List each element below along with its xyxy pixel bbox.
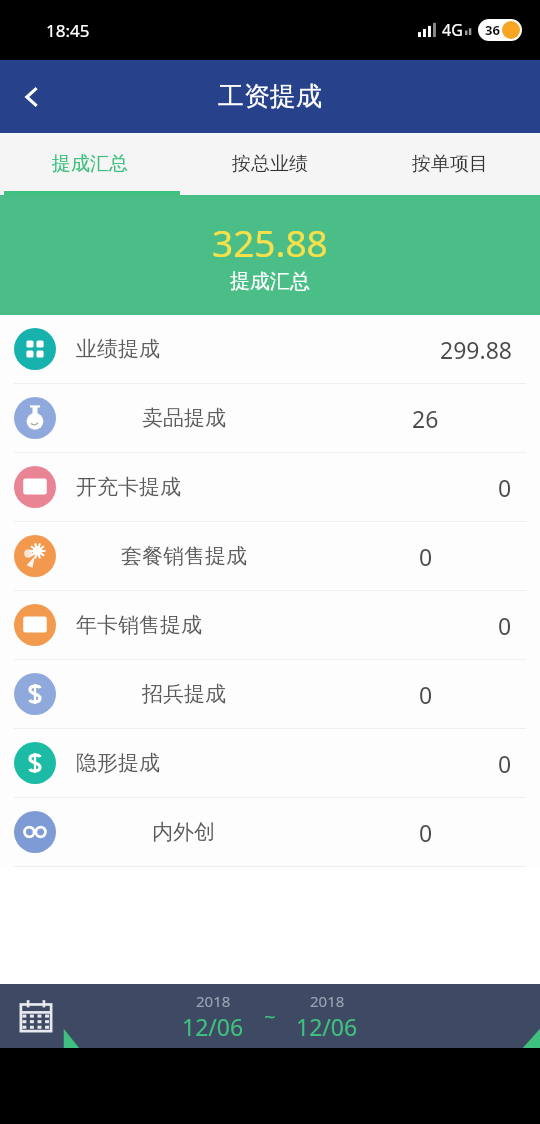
staticText: 年卡销售提成	[76, 612, 202, 638]
button[interactable]: 提成汇总	[0, 133, 180, 195]
staticText: 0	[419, 817, 433, 848]
button[interactable]: Pick date range	[0, 984, 540, 1048]
staticText: 26	[412, 403, 439, 434]
button[interactable]: 按单项目	[360, 133, 540, 195]
staticText: 套餐销售提成	[121, 543, 247, 569]
staticText: 开充卡提成	[76, 474, 181, 500]
button[interactable]: 内外创	[0, 798, 540, 866]
staticText: 0	[498, 610, 512, 641]
staticText: 内外创	[152, 819, 215, 845]
staticText: 0	[419, 679, 433, 710]
staticText: 业绩提成	[76, 336, 160, 362]
other: Pick date range	[18, 998, 54, 1034]
staticText: 隐形提成	[76, 750, 160, 776]
staticText: 325.88	[212, 217, 328, 267]
staticText: 按单项目	[412, 152, 488, 176]
button[interactable]: 开充卡提成	[0, 453, 540, 521]
staticText: 12/06	[182, 1011, 244, 1042]
staticText: 2018	[310, 991, 345, 1011]
staticText: 0	[498, 472, 512, 503]
staticText: 36	[485, 21, 500, 39]
staticText: 2018	[196, 991, 231, 1011]
button[interactable]: 按总业绩	[180, 133, 360, 195]
staticText: 18:45	[46, 19, 90, 42]
staticText: 按总业绩	[232, 152, 308, 176]
staticText: 提成汇总	[52, 152, 128, 176]
staticText: 12/06	[296, 1011, 358, 1042]
staticText: 工资提成	[218, 80, 322, 113]
staticText: 0	[419, 541, 433, 572]
button[interactable]: 年卡销售提成	[0, 591, 540, 659]
staticText: 提成汇总	[230, 269, 310, 294]
button[interactable]: 招兵提成	[0, 660, 540, 728]
staticText: 招兵提成	[142, 681, 226, 707]
staticText: 299.88	[440, 334, 512, 365]
staticText: 4G	[442, 19, 463, 41]
staticText: 卖品提成	[142, 405, 226, 431]
button[interactable]: 隐形提成	[0, 729, 540, 797]
button[interactable]: 卖品提成	[0, 384, 540, 452]
button[interactable]: 业绩提成	[0, 315, 540, 383]
button[interactable]: Back	[0, 65, 64, 129]
staticText: ~	[264, 1003, 276, 1030]
staticText: 0	[498, 748, 512, 779]
button[interactable]: 套餐销售提成	[0, 522, 540, 590]
